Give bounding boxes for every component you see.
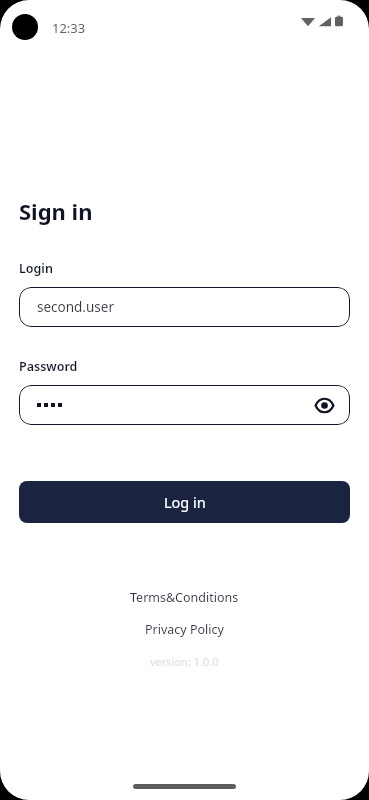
staticText: version: 1.0.0 <box>150 654 219 669</box>
staticText: Password <box>19 358 78 375</box>
staticText: 12:33 <box>52 19 86 37</box>
button[interactable]: Privacy Policy <box>19 621 350 638</box>
button[interactable]: Show password <box>19 385 350 425</box>
staticText: Terms&Conditions <box>130 589 239 606</box>
button[interactable]: Terms&Conditions <box>19 589 350 606</box>
button[interactable]: Show password <box>312 393 336 417</box>
staticText: Login <box>19 260 53 277</box>
button[interactable]: second.user <box>19 287 350 327</box>
button[interactable]: Log in <box>19 481 350 523</box>
staticText: second.user <box>37 298 114 316</box>
staticText: Log in <box>164 492 206 512</box>
staticText: Privacy Policy <box>145 621 224 638</box>
staticText: Sign in <box>19 196 93 226</box>
